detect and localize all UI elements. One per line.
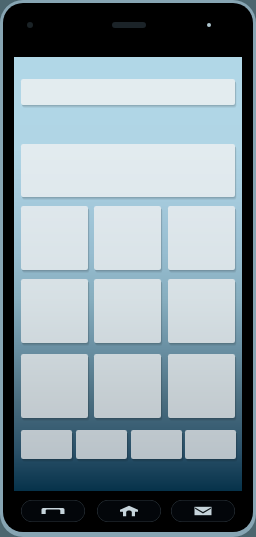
button[interactable]: [185, 430, 236, 459]
button[interactable]: Home: [97, 500, 161, 522]
button[interactable]: [76, 430, 127, 459]
button[interactable]: [94, 354, 161, 418]
button[interactable]: [131, 430, 182, 459]
button[interactable]: Call: [21, 500, 85, 522]
button[interactable]: [21, 279, 88, 343]
button[interactable]: [21, 354, 88, 418]
button[interactable]: Mail: [171, 500, 235, 522]
button[interactable]: [168, 279, 235, 343]
button[interactable]: [21, 430, 72, 459]
button[interactable]: [168, 354, 235, 418]
button[interactable]: [94, 279, 161, 343]
